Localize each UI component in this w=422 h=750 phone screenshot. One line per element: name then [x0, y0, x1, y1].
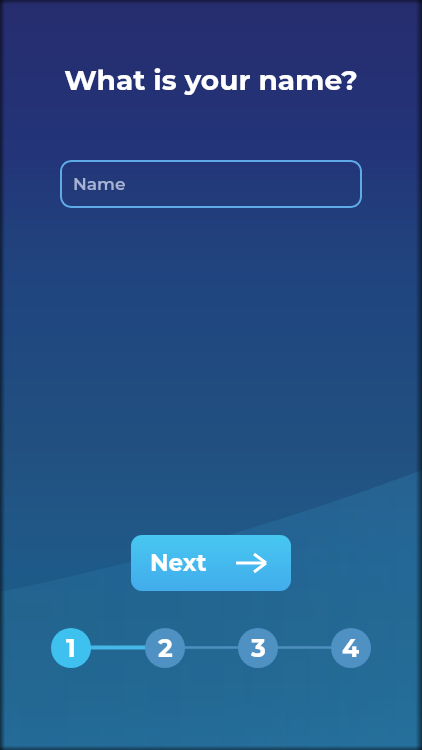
other: Next — [236, 554, 266, 574]
button[interactable]: 4 — [331, 628, 371, 668]
staticText: What is your name? — [64, 63, 358, 97]
button[interactable]: 3 — [238, 628, 278, 668]
button[interactable]: Next — [131, 535, 291, 591]
staticText: Next — [150, 549, 207, 577]
staticText: 2 — [158, 633, 173, 663]
staticText: Name — [73, 174, 126, 195]
staticText: 1 — [66, 633, 76, 663]
staticText: 4 — [342, 633, 360, 663]
button[interactable]: 1 — [51, 628, 91, 668]
button[interactable]: 2 — [145, 628, 185, 668]
staticText: 3 — [251, 633, 266, 663]
button[interactable]: Name — [60, 160, 362, 208]
